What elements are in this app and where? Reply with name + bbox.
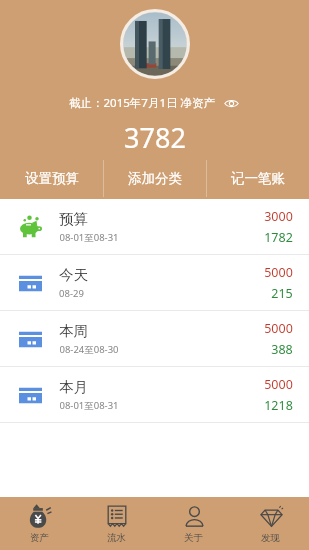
staticText: 本月 [59,378,88,396]
button[interactable]: 关于 [155,497,232,550]
staticText: 1218 [264,397,293,414]
staticText: 关于 [184,532,203,544]
staticText: 记一笔账 [231,170,285,187]
staticText: 5000 [264,320,293,337]
button[interactable]: 记一笔账 [207,158,309,199]
staticText: 5000 [264,376,293,393]
staticText: 流水 [107,532,126,544]
button[interactable]: 资产 [0,497,78,550]
staticText: 截止：2015年7月1日 净资产 [69,95,215,111]
button[interactable]: 本月 [0,367,309,422]
button[interactable]: 今天 [0,255,309,310]
staticText: 本周 [59,322,88,340]
staticText: 添加分类 [128,170,182,187]
staticText: 08-01至08-31 [59,231,119,244]
staticText: 资产 [30,532,49,544]
staticText: 08-24至08-30 [59,343,119,356]
staticText: 5000 [264,264,293,281]
staticText: 1782 [264,229,293,246]
button[interactable]: 预算 [0,199,309,254]
button[interactable]: 本周 [0,311,309,366]
button[interactable]: Toggle net asset visibility [222,97,240,110]
staticText: 3782 [124,119,186,156]
button[interactable]: 流水 [78,497,155,550]
button[interactable]: 发现 [232,497,309,550]
staticText: 3000 [264,208,293,225]
staticText: 08-29 [59,287,84,300]
staticText: 388 [271,341,293,358]
staticText: 发现 [261,532,280,544]
button[interactable]: Profile photo [119,8,191,80]
staticText: 08-01至08-31 [59,399,119,412]
staticText: 设置预算 [25,170,79,187]
staticText: 预算 [59,210,88,228]
button[interactable]: 添加分类 [104,158,206,199]
staticText: 215 [271,285,293,302]
staticText: 今天 [59,266,88,284]
button[interactable]: 设置预算 [0,158,103,199]
